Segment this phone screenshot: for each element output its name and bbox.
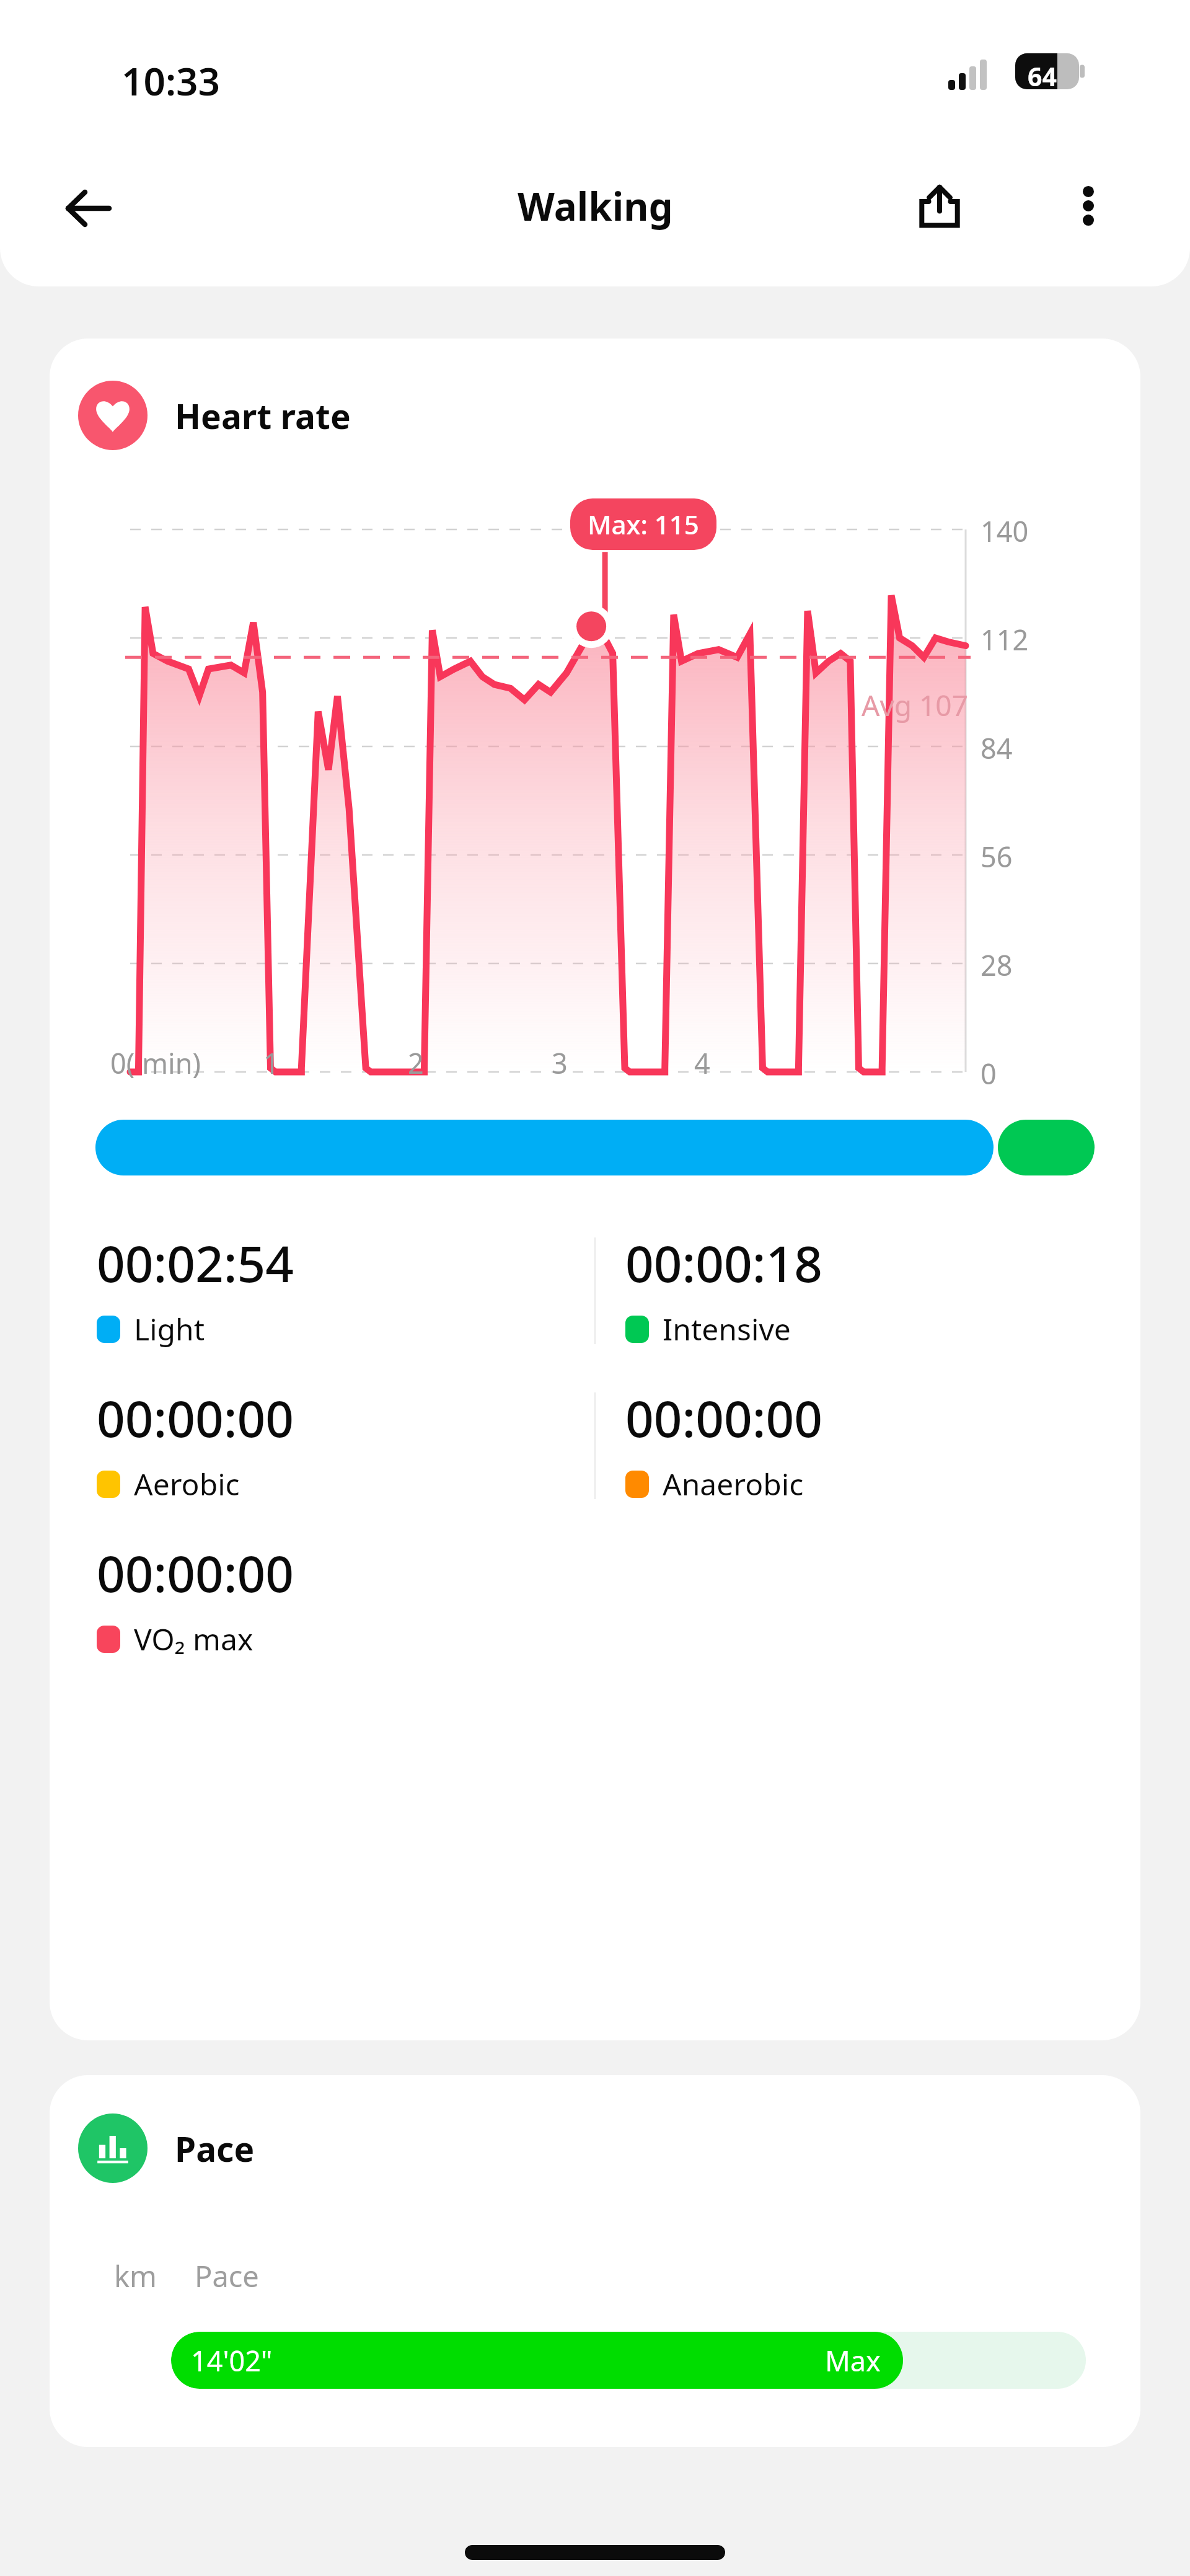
staticText: 00:00:00 xyxy=(97,1384,294,1451)
button[interactable]: More options xyxy=(1049,166,1128,246)
staticText: 64 xyxy=(1028,59,1057,94)
staticText: 0( min) xyxy=(110,1044,201,1082)
staticText: 140 xyxy=(981,512,1029,550)
staticText: Max xyxy=(825,2342,881,2379)
staticText: 56 xyxy=(981,838,1013,875)
staticText: 3 xyxy=(552,1044,568,1082)
staticText: VO₂ max xyxy=(134,1619,253,1659)
staticText: Intensive xyxy=(663,1309,791,1349)
staticText: Heart rate xyxy=(175,392,351,439)
staticText: 00:00:18 xyxy=(625,1229,823,1296)
staticText: 14'02" xyxy=(191,2342,273,2379)
staticText: Avg 107 xyxy=(862,686,968,725)
staticText: Anaerobic xyxy=(663,1464,804,1504)
staticText: 112 xyxy=(981,621,1029,658)
staticText: Pace xyxy=(195,2256,259,2296)
staticText: 00:00:00 xyxy=(97,1539,294,1606)
staticText: 0 xyxy=(981,1055,997,1092)
staticText: Aerobic xyxy=(134,1464,240,1504)
staticText: 84 xyxy=(981,729,1013,767)
staticText: Light xyxy=(134,1309,205,1349)
button[interactable]: Back xyxy=(48,169,128,248)
staticText: 1 xyxy=(263,1044,280,1082)
staticText: 00:00:00 xyxy=(625,1384,823,1451)
button[interactable]: Share xyxy=(900,166,979,246)
staticText: Pace xyxy=(175,2125,255,2172)
staticText: Max: 115 xyxy=(588,507,699,542)
staticText: 4 xyxy=(694,1044,710,1082)
staticText: 00:02:54 xyxy=(97,1229,294,1296)
staticText: Walking xyxy=(518,180,673,232)
staticText: km xyxy=(114,2256,157,2296)
button[interactable]: Pace xyxy=(50,2075,1140,2447)
staticText: 10:33 xyxy=(121,55,220,107)
staticText: 28 xyxy=(981,946,1013,984)
staticText: 2 xyxy=(408,1044,424,1082)
button[interactable]: Heart rate xyxy=(50,339,1140,2040)
